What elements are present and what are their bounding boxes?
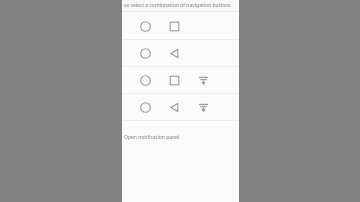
button[interactable]: Open notification panel — [122, 132, 239, 142]
staticText: Open notification panel — [124, 134, 180, 141]
button[interactable] — [122, 40, 239, 66]
button[interactable] — [122, 94, 239, 120]
staticText: se select a combination of navigation bu… — [124, 2, 231, 9]
button[interactable] — [122, 13, 239, 39]
button[interactable] — [122, 67, 239, 93]
